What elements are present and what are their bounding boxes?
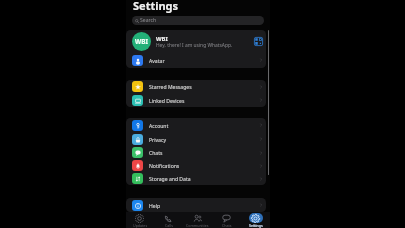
button[interactable]: Updates bbox=[126, 212, 154, 228]
staticText: Notifications bbox=[149, 163, 259, 170]
staticText: Chats bbox=[222, 223, 232, 228]
button[interactable]: Avatar bbox=[126, 52, 266, 68]
button[interactable]: Settings bbox=[241, 212, 270, 228]
staticText: Account bbox=[149, 123, 259, 130]
staticText: Calls bbox=[165, 223, 173, 228]
button[interactable]: Starred Messages bbox=[126, 80, 266, 93]
button[interactable]: Communities bbox=[183, 212, 212, 228]
button[interactable]: Storage and Data bbox=[126, 172, 266, 185]
button[interactable]: Privacy bbox=[126, 132, 266, 146]
staticText: Chats bbox=[149, 150, 259, 157]
staticText: Avatar bbox=[149, 58, 259, 65]
staticText: Help bbox=[149, 203, 259, 210]
staticText: Storage and Data bbox=[149, 176, 259, 183]
staticText: Settings bbox=[133, 0, 179, 13]
button[interactable]: Help bbox=[126, 198, 266, 212]
staticText: Search bbox=[140, 17, 157, 24]
button[interactable]: Chats bbox=[212, 212, 241, 228]
button[interactable]: WBI bbox=[126, 30, 266, 52]
staticText: Linked Devices bbox=[149, 98, 259, 105]
button[interactable]: Linked Devices bbox=[126, 93, 266, 107]
button[interactable]: Account bbox=[126, 118, 266, 132]
staticText: Hey, there! I am using WhatsApp. bbox=[156, 42, 233, 49]
button[interactable]: Search bbox=[132, 16, 264, 25]
button[interactable]: Chats bbox=[126, 146, 266, 159]
staticText: WBI bbox=[156, 35, 168, 43]
staticText: Starred Messages bbox=[149, 84, 259, 91]
staticText: Privacy bbox=[149, 137, 259, 144]
staticText: Communities bbox=[186, 223, 209, 228]
button[interactable]: QR code bbox=[252, 35, 264, 47]
staticText: Updates bbox=[133, 223, 148, 228]
staticText: WBI bbox=[135, 37, 148, 46]
staticText: Settings bbox=[249, 223, 263, 228]
button[interactable]: Calls bbox=[154, 212, 183, 228]
button[interactable]: Notifications bbox=[126, 159, 266, 172]
